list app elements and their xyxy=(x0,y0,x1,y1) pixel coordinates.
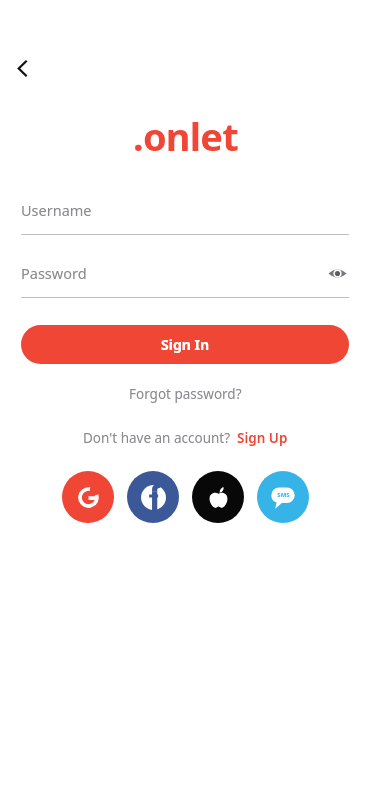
button[interactable]: Sign Up xyxy=(237,426,288,450)
button[interactable]: Username xyxy=(21,198,349,235)
button[interactable]: Sign in with Apple xyxy=(192,471,244,523)
staticText: Forgot password? xyxy=(129,385,242,403)
staticText: SMS xyxy=(277,491,290,499)
staticText: Username xyxy=(21,200,349,220)
button[interactable]: Sign in with SMS xyxy=(257,471,309,523)
button[interactable]: Show password xyxy=(325,261,349,285)
button[interactable]: Password xyxy=(21,261,349,298)
button[interactable]: Forgot password? xyxy=(119,380,252,408)
staticText: .onlet xyxy=(133,110,238,162)
button[interactable]: Back xyxy=(4,50,40,86)
staticText: Sign In xyxy=(161,335,210,354)
staticText: Sign Up xyxy=(237,429,288,447)
button[interactable]: Sign In xyxy=(21,325,349,364)
button[interactable]: Sign in with Facebook xyxy=(127,471,179,523)
staticText: Don't have an account? xyxy=(83,429,231,447)
staticText: Password xyxy=(21,263,325,283)
button[interactable]: Sign in with Google xyxy=(62,471,114,523)
